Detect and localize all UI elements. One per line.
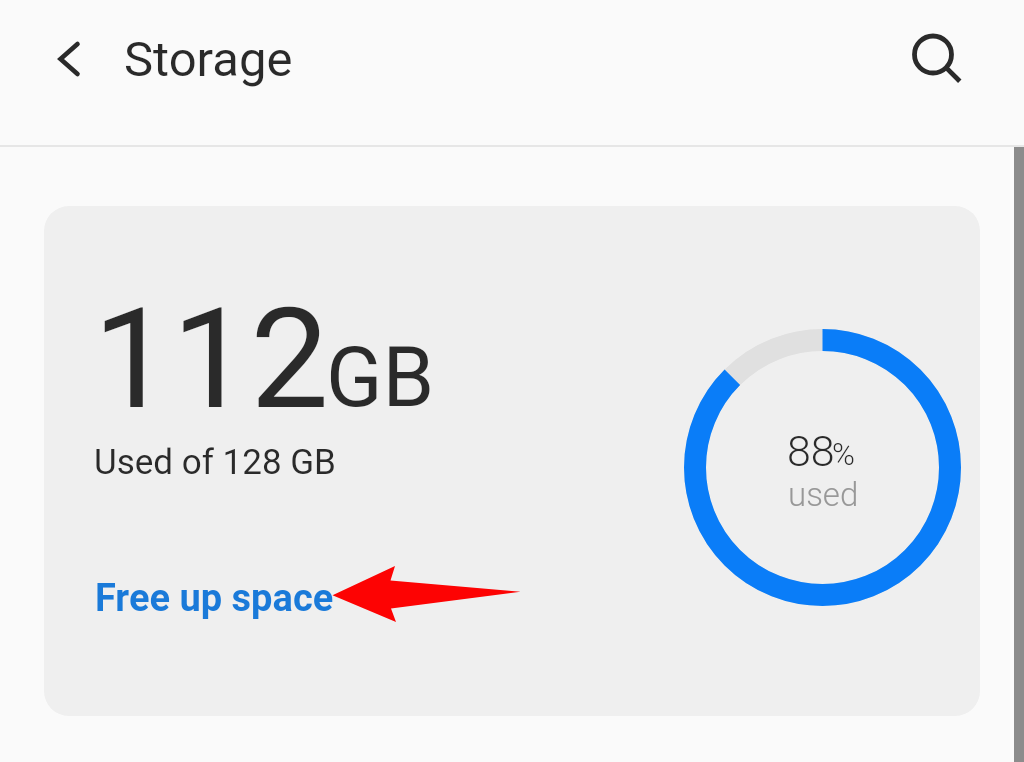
button[interactable]: Search [890, 13, 978, 101]
staticText: used [788, 475, 859, 514]
staticText: Storage [124, 31, 293, 88]
staticText: % [832, 436, 855, 472]
staticText: 88 [787, 426, 835, 476]
staticText: Used of 128 GB [94, 442, 336, 483]
staticText: GB [326, 329, 435, 426]
button[interactable]: Free up space [87, 568, 342, 629]
staticText: Free up space [95, 576, 334, 621]
staticText: 112 [93, 277, 330, 441]
button[interactable]: Navigate back [25, 15, 113, 103]
